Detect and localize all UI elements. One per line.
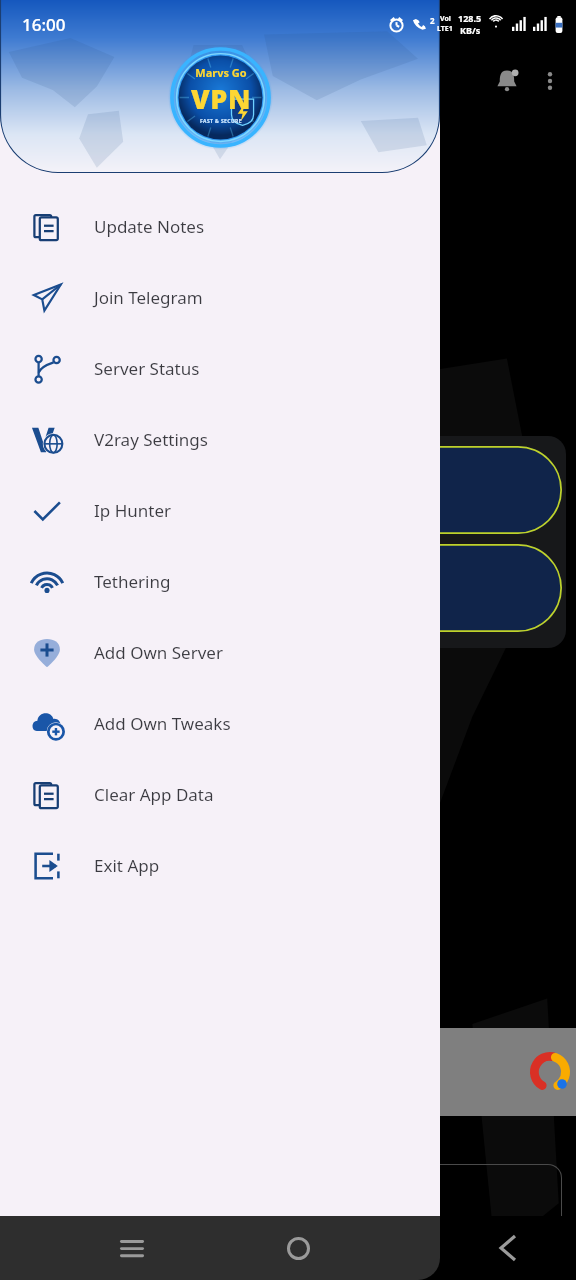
staticText: VPN [191,80,251,117]
button[interactable]: Add Own Tweaks [0,688,440,759]
staticText: FAST & SECURE [200,118,242,125]
button[interactable]: V2ray Settings [0,404,440,475]
staticText: Marvs Go [195,65,247,80]
staticText: Clear App Data [94,783,214,806]
button[interactable]: Use Config [4,544,562,632]
button[interactable]: Ip Hunter [0,475,440,546]
button[interactable]: Back [484,1224,532,1272]
button[interactable]: Server Status [0,333,440,404]
staticText: Update Notes [94,215,205,238]
staticText: KB/s [460,24,481,36]
staticText: Add Own Tweaks [94,712,231,735]
staticText: 128.5 [458,12,482,24]
staticText: 2 [430,15,435,26]
button[interactable]: More options [530,58,570,104]
staticText: Upload [6,380,54,399]
button[interactable]: Update Notes [0,191,440,262]
button[interactable]: EXIT [0,1164,562,1246]
staticText: Server Status [94,357,200,380]
staticText: EXIT [265,1212,298,1231]
staticText: LTE1 [437,24,453,34]
button[interactable]: Select server [4,446,562,534]
staticText: Vol [440,14,451,24]
staticText: Config : 1.47 [244,124,332,144]
staticText: Exit App [94,854,160,877]
staticText: Tethering [94,570,171,593]
staticText: Join Telegram [94,286,203,309]
button[interactable]: Clear App Data [0,759,440,830]
staticText: V2ray Settings [94,428,208,451]
button[interactable]: Add Own Server [0,617,440,688]
staticText: Add Own Server [94,641,223,664]
button[interactable]: Notifications [484,58,530,104]
button[interactable]: Join Telegram [0,262,440,333]
button[interactable]: Recents [108,1224,156,1272]
button[interactable]: Tethering [0,546,440,617]
button[interactable]: Exit App [0,830,440,901]
staticText: Ip Hunter [94,499,171,522]
staticText: 16:00 [22,13,66,36]
button[interactable]: Home [274,1224,322,1272]
